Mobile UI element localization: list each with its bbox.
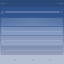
button[interactable] — [0, 17, 64, 27]
button[interactable]: Search — [30, 57, 35, 62]
button[interactable] — [1, 46, 63, 55]
button[interactable]: Menu — [0, 7, 64, 17]
button[interactable]: Menu — [1, 11, 4, 14]
button[interactable]: Home — [12, 57, 17, 62]
button[interactable] — [1, 27, 63, 35]
button[interactable] — [1, 36, 63, 45]
button[interactable]: Profile — [47, 57, 52, 62]
